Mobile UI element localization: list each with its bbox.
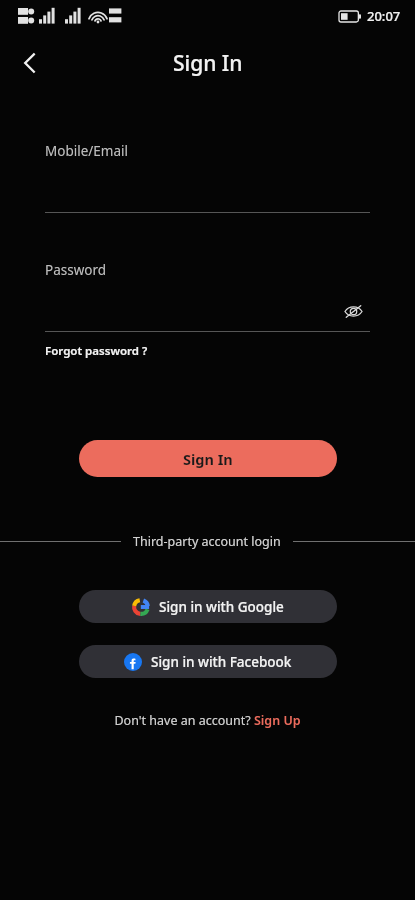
staticText: Password — [45, 261, 107, 279]
button[interactable]: Back — [8, 41, 52, 85]
button[interactable]: Sign in with Google — [79, 590, 337, 623]
button[interactable]: Forgot password ? — [45, 343, 148, 359]
button[interactable]: Show password — [336, 294, 370, 328]
staticText: Sign in with Google — [159, 598, 284, 616]
staticText: Third-party account login — [133, 533, 281, 550]
staticText: Mobile/Email — [45, 142, 128, 160]
staticText: Sign in with Facebook — [151, 653, 292, 671]
staticText: Sign In — [183, 449, 233, 469]
button[interactable]: Sign In — [79, 440, 337, 477]
button[interactable]: Sign in with Facebook — [79, 645, 337, 678]
staticText: 20:07 — [367, 7, 401, 25]
staticText: Don't have an account? Sign Up — [114, 712, 301, 729]
staticText: Sign In — [173, 49, 243, 78]
button[interactable]: Don't have an account? Sign Up — [110, 710, 305, 731]
staticText: Forgot password ? — [45, 343, 148, 359]
